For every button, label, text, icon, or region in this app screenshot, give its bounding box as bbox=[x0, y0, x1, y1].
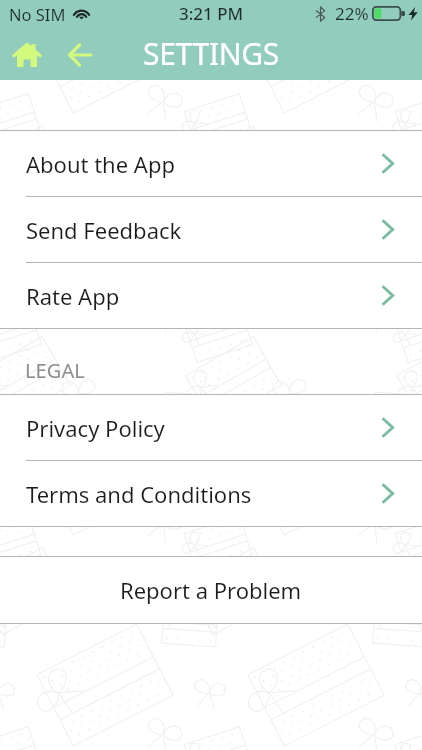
button[interactable]: Back bbox=[54, 30, 105, 80]
button[interactable]: Send Feedback bbox=[0, 197, 422, 262]
button[interactable]: Report a Problem bbox=[0, 557, 422, 623]
staticText: 3:21 PM bbox=[179, 2, 244, 25]
staticText: Rate App bbox=[26, 281, 120, 311]
staticText: Send Feedback bbox=[26, 215, 182, 245]
staticText: LEGAL bbox=[25, 357, 85, 384]
button[interactable]: About the App bbox=[0, 131, 422, 196]
staticText: Report a Problem bbox=[120, 575, 302, 605]
staticText: No SIM bbox=[9, 3, 66, 25]
button[interactable]: Home bbox=[0, 30, 54, 80]
staticText: SETTINGS bbox=[143, 33, 279, 74]
staticText: 22% bbox=[335, 2, 369, 25]
button[interactable]: Terms and Conditions bbox=[0, 461, 422, 526]
button[interactable]: Privacy Policy bbox=[0, 395, 422, 460]
staticText: Terms and Conditions bbox=[26, 479, 252, 509]
button[interactable]: Rate App bbox=[0, 263, 422, 328]
staticText: About the App bbox=[26, 149, 175, 179]
staticText: Privacy Policy bbox=[26, 413, 165, 443]
